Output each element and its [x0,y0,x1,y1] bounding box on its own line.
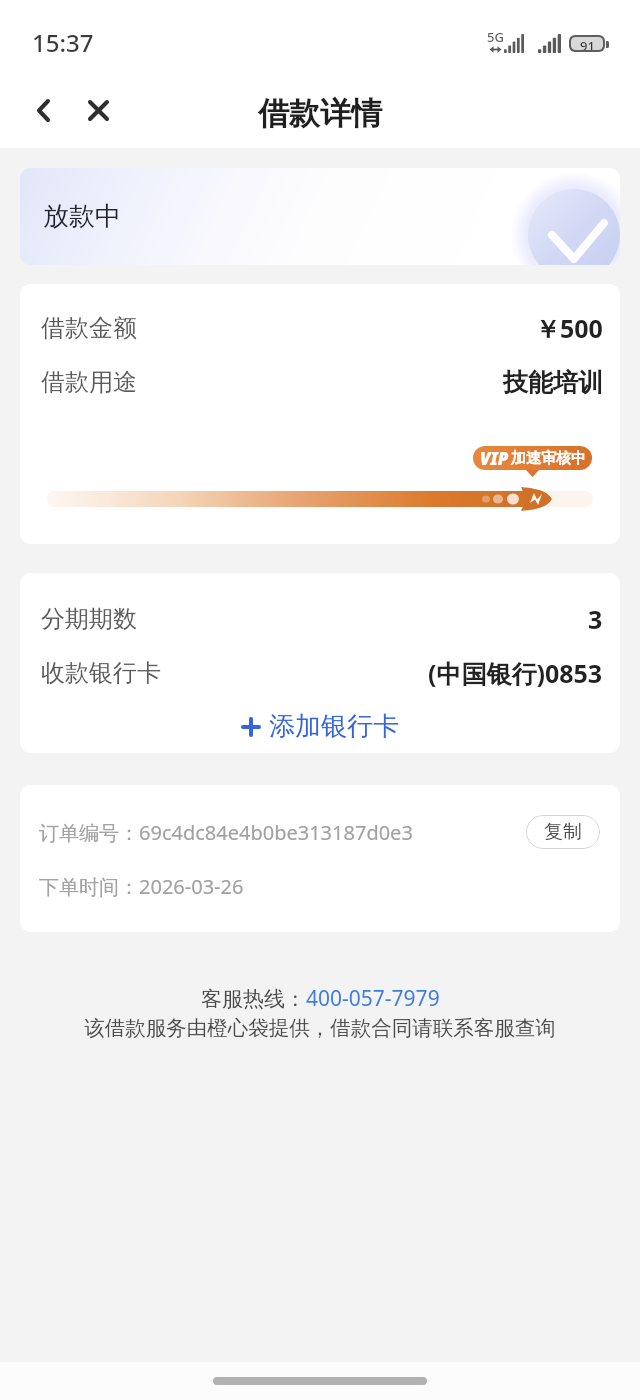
button[interactable]: Back [10,77,76,143]
staticText: 借款用途 [41,367,137,397]
staticText: 订单编号：69c4dc84e4b0be313187d0e3 [39,819,413,846]
button[interactable]: VIP [473,446,592,470]
staticText: 客服热线： [201,986,306,1012]
staticText: 5G [487,28,504,46]
staticText: ￥500 [535,311,603,345]
staticText: 借款详情 [258,94,382,133]
staticText: 借款金额 [41,313,137,343]
staticText: 加速审核中 [511,449,586,468]
staticText: 下单时间：2026-03-26 [39,873,244,900]
staticText: 技能培训 [503,367,603,398]
staticText: 收款银行卡 [41,658,161,688]
staticText: 该借款服务由橙心袋提供，借款合同请联系客服查询 [84,1015,556,1041]
button[interactable]: Close [65,77,131,143]
staticText: 3 [588,602,603,636]
staticText: 复制 [544,820,582,844]
staticText: 15:37 [32,26,94,59]
button[interactable]: 400-057-7979 [306,984,440,1013]
staticText: VIP [480,447,509,470]
button[interactable]: 添加银行卡 [20,700,620,753]
staticText: 放款中 [43,200,121,233]
staticText: 添加银行卡 [269,710,399,743]
staticText: 分期期数 [41,604,137,634]
staticText: 91 [580,37,595,50]
staticText: (中国银行)0853 [428,656,603,690]
button[interactable]: 复制 [526,815,600,849]
button[interactable]: 放款中 [20,168,620,265]
